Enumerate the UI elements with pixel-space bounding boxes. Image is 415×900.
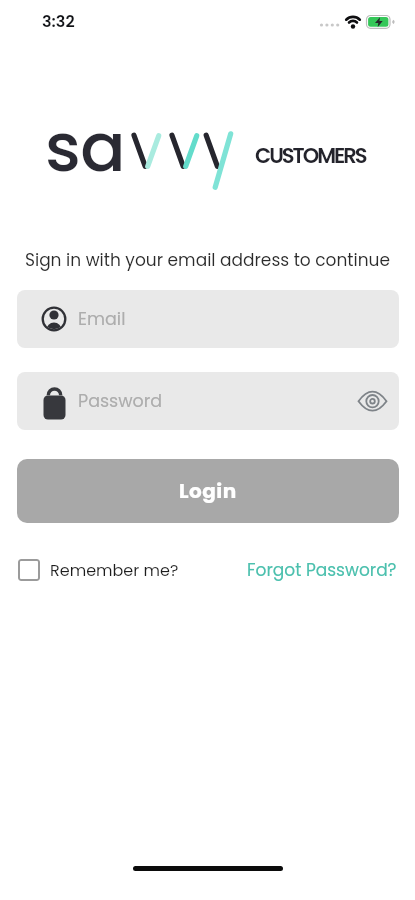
staticText: Email [78, 307, 126, 332]
staticText: CUSTOMERS [255, 141, 366, 170]
button[interactable]: Password [17, 372, 399, 430]
button[interactable]: Email [17, 290, 399, 348]
staticText: Login [179, 477, 237, 505]
button[interactable]: Forgot Password? [247, 558, 397, 582]
staticText: Password [78, 389, 163, 414]
staticText: Remember me? [50, 559, 179, 581]
button[interactable] [18, 559, 40, 581]
staticText: sa [45, 101, 126, 195]
staticText: 3:32 [42, 10, 75, 32]
staticText: Sign in with your email address to conti… [0, 248, 415, 272]
button[interactable]: Login [17, 459, 399, 523]
